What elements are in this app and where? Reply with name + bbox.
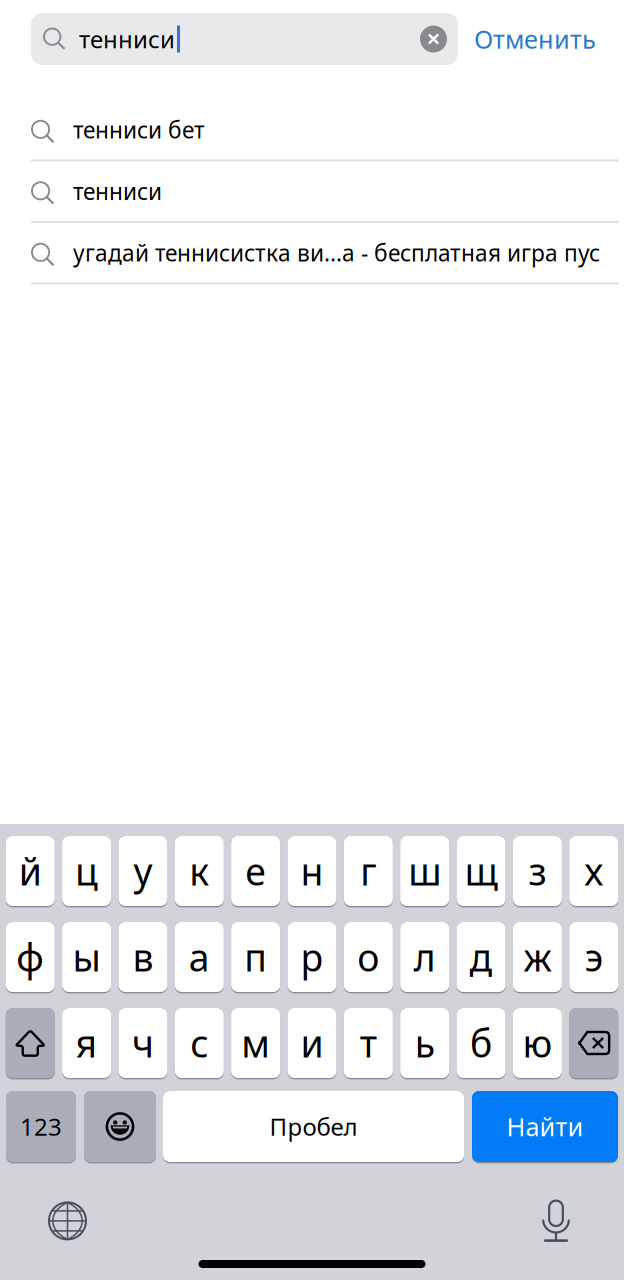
button[interactable]: ь: [400, 1008, 449, 1079]
button[interactable]: ш: [400, 836, 449, 907]
button[interactable]: Dictate: [542, 1199, 570, 1242]
button[interactable]: ы: [62, 922, 111, 993]
staticText: тенниси бет: [73, 115, 205, 145]
button[interactable]: 123: [6, 1091, 76, 1163]
staticText: н: [300, 846, 323, 896]
staticText: к: [189, 846, 209, 896]
staticText: р: [300, 932, 323, 982]
staticText: ж: [523, 932, 551, 982]
button[interactable]: угадай теннисистка ви...а - бесплатная и…: [0, 223, 624, 284]
staticText: б: [470, 1018, 492, 1068]
staticText: в: [132, 932, 153, 982]
staticText: у: [133, 846, 152, 896]
staticText: а: [189, 932, 210, 982]
button[interactable]: Next keyboard: [48, 1201, 87, 1240]
button[interactable]: д: [457, 922, 506, 993]
staticText: ч: [132, 1018, 154, 1068]
staticText: угадай теннисистка ви...а - бесплатная и…: [73, 238, 600, 268]
staticText: Отменить: [474, 22, 596, 56]
button[interactable]: о: [344, 922, 393, 993]
button[interactable]: ц: [62, 836, 111, 907]
button[interactable]: Пробел: [163, 1091, 464, 1163]
button[interactable]: Clear text: [420, 25, 447, 52]
button[interactable]: Delete: [569, 1008, 618, 1079]
staticText: с: [190, 1018, 208, 1068]
button[interactable]: н: [287, 836, 336, 907]
staticText: м: [241, 1018, 270, 1068]
button[interactable]: щ: [457, 836, 506, 907]
button[interactable]: к: [175, 836, 224, 907]
staticText: ш: [408, 846, 441, 896]
staticText: щ: [465, 846, 498, 896]
button[interactable]: ж: [513, 922, 562, 993]
button[interactable]: Найти: [472, 1091, 618, 1163]
button[interactable]: я: [62, 1008, 111, 1079]
button[interactable]: м: [231, 1008, 280, 1079]
staticText: й: [19, 846, 42, 896]
staticText: ф: [16, 932, 44, 982]
staticText: п: [244, 932, 267, 982]
button[interactable]: Shift: [6, 1008, 55, 1079]
button[interactable]: л: [400, 922, 449, 993]
button[interactable]: з: [513, 836, 562, 907]
staticText: е: [245, 846, 266, 896]
button[interactable]: т: [344, 1008, 393, 1079]
button[interactable]: э: [569, 922, 618, 993]
button[interactable]: г: [344, 836, 393, 907]
staticText: х: [584, 846, 603, 896]
button[interactable]: ч: [118, 1008, 167, 1079]
staticText: тенниси: [73, 176, 162, 206]
staticText: э: [585, 932, 603, 982]
staticText: з: [528, 846, 546, 896]
button[interactable]: р: [287, 922, 336, 993]
staticText: тенниси: [79, 23, 175, 55]
button[interactable]: тенниси: [0, 161, 624, 223]
button[interactable]: Emoji: [84, 1091, 156, 1163]
button[interactable]: п: [231, 922, 280, 993]
staticText: ю: [522, 1018, 552, 1068]
staticText: 123: [20, 1111, 62, 1142]
button[interactable]: тенниси бет: [0, 100, 624, 161]
staticText: г: [360, 846, 376, 896]
button[interactable]: е: [231, 836, 280, 907]
button[interactable]: й: [6, 836, 55, 907]
button[interactable]: ю: [513, 1008, 562, 1079]
button[interactable]: у: [118, 836, 167, 907]
staticText: и: [300, 1018, 323, 1068]
button[interactable]: а: [175, 922, 224, 993]
button[interactable]: и: [287, 1008, 336, 1079]
staticText: Пробел: [269, 1111, 357, 1142]
staticText: д: [470, 932, 493, 982]
button[interactable]: ф: [6, 922, 55, 993]
staticText: т: [360, 1018, 377, 1068]
staticText: о: [357, 932, 379, 982]
button[interactable]: в: [118, 922, 167, 993]
staticText: Найти: [506, 1110, 583, 1143]
button[interactable]: с: [175, 1008, 224, 1079]
button[interactable]: Отменить: [466, 13, 604, 65]
staticText: я: [76, 1018, 98, 1068]
staticText: ы: [73, 932, 101, 982]
staticText: ц: [75, 846, 98, 896]
button[interactable]: б: [457, 1008, 506, 1079]
staticText: л: [414, 932, 436, 982]
staticText: ь: [415, 1018, 435, 1068]
button[interactable]: х: [569, 836, 618, 907]
